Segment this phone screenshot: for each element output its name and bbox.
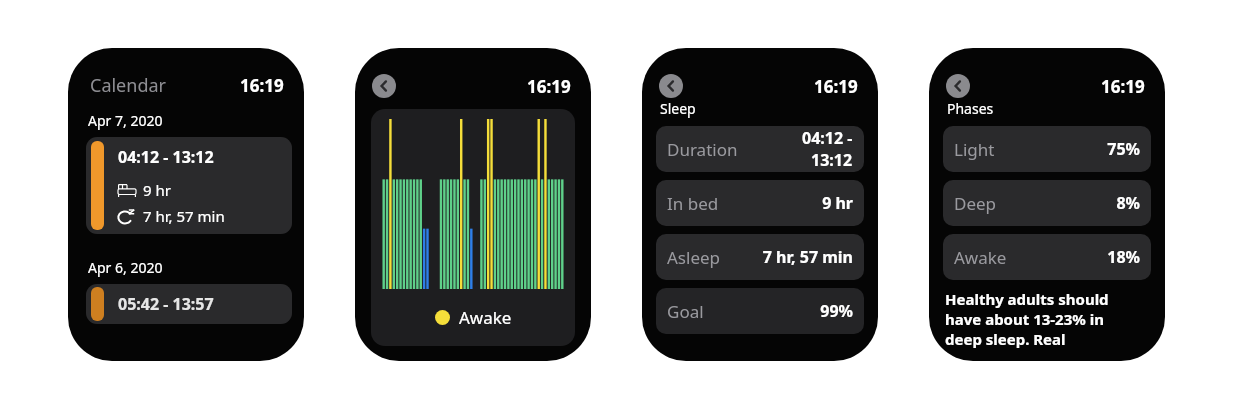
- staticText: Apr 7, 2020: [88, 111, 163, 130]
- button[interactable]: 04:12 - 13:12: [86, 137, 292, 234]
- button[interactable]: Back: [946, 74, 970, 98]
- button[interactable]: Deep: [943, 180, 1151, 226]
- staticText: 9 hr: [143, 180, 171, 200]
- staticText: 16:19: [240, 74, 284, 97]
- staticText: 05:42 - 13:57: [118, 293, 214, 315]
- staticText: have about 13-23% in: [945, 309, 1104, 329]
- staticText: 7 hr, 57 min: [762, 246, 853, 268]
- staticText: Awake: [459, 306, 512, 329]
- staticText: 8%: [1116, 192, 1140, 214]
- button[interactable]: Goal: [656, 288, 864, 334]
- button[interactable]: 05:42 - 13:57: [86, 284, 292, 324]
- staticText: 75%: [1107, 138, 1140, 160]
- staticText: 04:12 -: [802, 127, 853, 149]
- button[interactable]: Awake: [943, 234, 1151, 280]
- staticText: In bed: [667, 192, 719, 215]
- staticText: 18%: [1107, 246, 1140, 268]
- staticText: Phases: [947, 99, 994, 118]
- staticText: deep sleep. Real: [945, 329, 1066, 349]
- staticText: 16:19: [527, 75, 571, 98]
- staticText: Deep: [954, 192, 997, 215]
- staticText: Awake: [954, 246, 1007, 269]
- button[interactable]: Duration: [656, 126, 864, 172]
- staticText: Asleep: [667, 246, 721, 269]
- staticText: Calendar: [90, 73, 166, 98]
- staticText: Duration: [667, 138, 738, 161]
- staticText: Light: [954, 138, 995, 161]
- staticText: 04:12 - 13:12: [118, 146, 214, 168]
- button[interactable]: Back: [372, 74, 396, 98]
- staticText: Healthy adults should: [945, 289, 1109, 309]
- staticText: 9 hr: [822, 192, 853, 214]
- button[interactable]: In bed: [656, 180, 864, 226]
- staticText: 16:19: [1101, 75, 1145, 98]
- staticText: 99%: [820, 300, 853, 322]
- button[interactable]: Light: [943, 126, 1151, 172]
- staticText: 7 hr, 57 min: [143, 206, 225, 226]
- staticText: 13:12: [811, 149, 853, 171]
- button[interactable]: Asleep: [656, 234, 864, 280]
- staticText: 16:19: [814, 75, 858, 98]
- staticText: Apr 6, 2020: [88, 258, 163, 277]
- staticText: Goal: [667, 300, 704, 323]
- button[interactable]: Back: [659, 74, 683, 98]
- staticText: Sleep: [660, 99, 696, 118]
- button[interactable]: Awake: [371, 109, 575, 346]
